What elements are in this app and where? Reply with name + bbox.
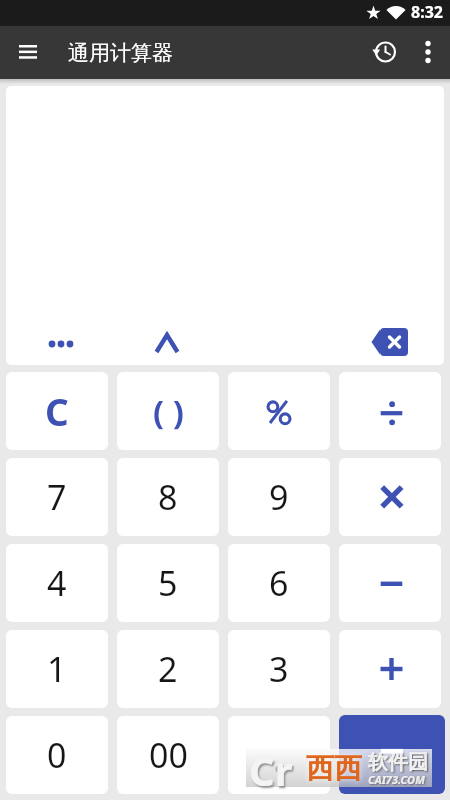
staticText: 4 [47,560,67,606]
staticText: 00 [149,732,188,778]
button[interactable]: 9 [228,458,330,536]
button[interactable]: 4 [6,544,108,622]
button[interactable] [421,39,435,65]
button[interactable] [370,326,412,358]
staticText: 6 [269,560,289,606]
button[interactable]: 1 [6,630,108,708]
staticText: 7 [47,474,67,520]
button[interactable]: 5 [117,544,219,622]
staticText: 8 [158,474,178,520]
staticText: 通用计算器 [68,40,173,66]
staticText: C [45,386,69,436]
staticText: CAI73.COM [368,772,425,787]
button[interactable]: 7 [6,458,108,536]
staticText: 5 [158,560,178,606]
button[interactable]: 6 [228,544,330,622]
staticText: 9 [269,474,289,520]
button[interactable] [339,630,441,708]
staticText: 8:32 [411,1,443,23]
staticText: 2 [158,646,178,692]
button[interactable] [46,336,78,352]
staticText: ( ) [153,389,184,434]
button[interactable] [372,39,398,65]
staticText: 软件园 [368,750,428,775]
button[interactable]: 3 [228,630,330,708]
button[interactable]: 2 [117,630,219,708]
staticText: 0 [47,732,67,778]
button[interactable]: C [6,372,108,450]
button[interactable] [339,458,441,536]
staticText: 3 [269,646,289,692]
button[interactable] [153,329,181,357]
staticText: Cr [249,743,293,797]
staticText: 1 [47,646,67,692]
button[interactable] [339,715,445,794]
staticText: 西西 [306,751,362,786]
button[interactable] [339,544,441,622]
button[interactable]: 00 [117,716,219,794]
button[interactable]: 0 [6,716,108,794]
button[interactable] [19,45,37,59]
button[interactable]: ( ) [117,372,219,450]
button[interactable] [228,716,330,794]
button[interactable] [228,372,330,450]
button[interactable] [339,372,441,450]
button[interactable]: 8 [117,458,219,536]
